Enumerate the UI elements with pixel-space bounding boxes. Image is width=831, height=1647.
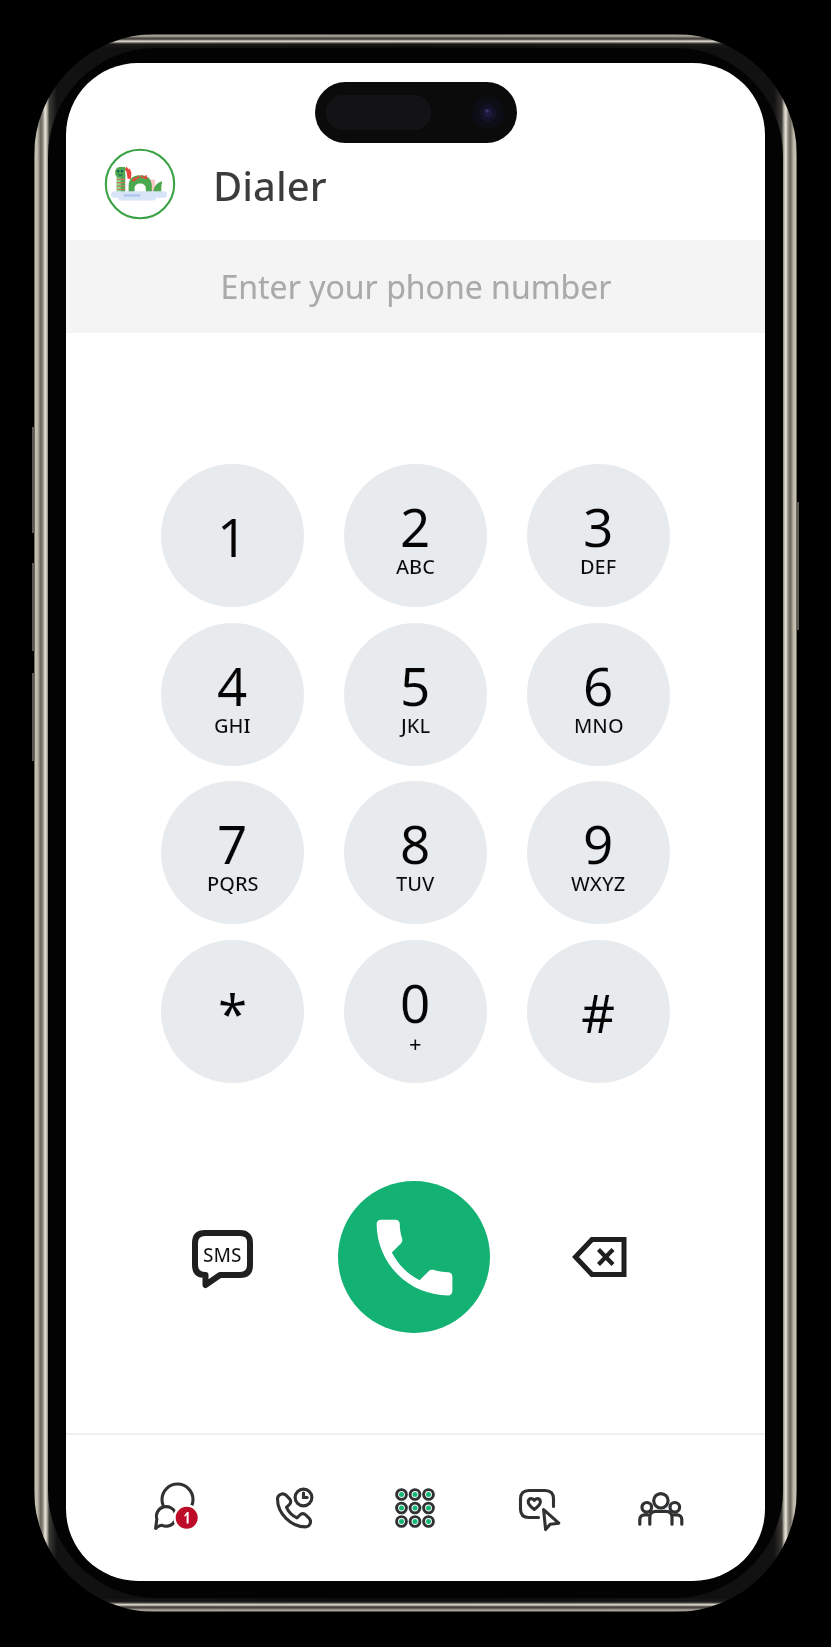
button[interactable]: Send SMS xyxy=(174,1209,270,1305)
staticText: + xyxy=(409,1028,422,1058)
button[interactable]: Backspace xyxy=(552,1209,648,1305)
button[interactable]: Enter your phone number xyxy=(66,240,765,333)
staticText: 0 xyxy=(400,966,431,1038)
button[interactable]: App icon xyxy=(104,148,176,220)
staticText: SMS xyxy=(203,1242,242,1266)
staticText: JKL xyxy=(401,712,431,739)
button[interactable]: # xyxy=(527,940,670,1083)
staticText: GHI xyxy=(214,712,251,739)
staticText: * xyxy=(218,976,248,1048)
staticText: 8 xyxy=(400,807,431,879)
staticText: 2 xyxy=(400,490,431,562)
staticText: Dialer xyxy=(213,158,327,212)
button[interactable]: Keypad xyxy=(359,1463,471,1553)
button[interactable]: * xyxy=(161,940,304,1083)
staticText: MNO xyxy=(574,712,624,739)
staticText: TUV xyxy=(396,870,435,897)
button[interactable]: Call xyxy=(338,1181,490,1333)
button[interactable]: 9 xyxy=(527,781,670,924)
staticText: Enter your phone number xyxy=(220,265,612,309)
button[interactable]: 0 xyxy=(344,940,487,1083)
staticText: 5 xyxy=(400,649,431,721)
button[interactable]: Contacts xyxy=(604,1463,716,1553)
button[interactable]: Stickers xyxy=(483,1463,595,1553)
staticText: # xyxy=(581,976,616,1048)
button[interactable]: 8 xyxy=(344,781,487,924)
staticText: PQRS xyxy=(207,870,259,897)
button[interactable]: Recent calls xyxy=(237,1463,349,1553)
button[interactable]: 6 xyxy=(527,623,670,766)
staticText: DEF xyxy=(580,553,617,580)
button[interactable]: Dialer xyxy=(213,155,327,215)
button[interactable]: 1 xyxy=(161,464,304,607)
button[interactable]: 7 xyxy=(161,781,304,924)
staticText: 3 xyxy=(583,490,614,562)
staticText: 6 xyxy=(583,649,614,721)
staticText: ABC xyxy=(396,553,435,580)
staticText: 7 xyxy=(217,807,248,879)
button[interactable]: 3 xyxy=(527,464,670,607)
staticText: 4 xyxy=(217,649,248,721)
button[interactable]: Chats xyxy=(121,1463,233,1553)
staticText: 9 xyxy=(583,807,614,879)
button[interactable]: 5 xyxy=(344,623,487,766)
staticText: WXYZ xyxy=(571,870,626,897)
button[interactable]: 4 xyxy=(161,623,304,766)
staticText: 1 xyxy=(217,500,248,572)
button[interactable]: 2 xyxy=(344,464,487,607)
